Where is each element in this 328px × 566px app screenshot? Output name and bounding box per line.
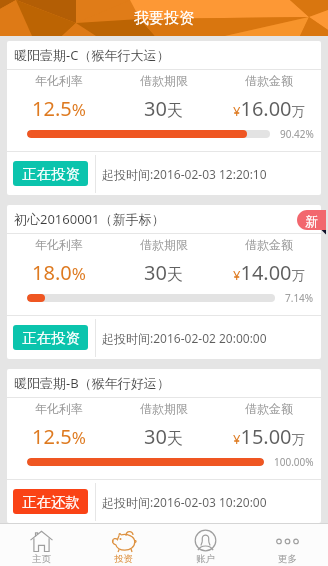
staticText: 年化利率 xyxy=(35,73,83,88)
staticText: 30天 xyxy=(144,95,183,122)
button[interactable]: 投资 xyxy=(82,524,164,566)
staticText: 12.5% xyxy=(32,423,86,450)
staticText: 正在还款 xyxy=(22,493,80,511)
staticText: 更多 xyxy=(278,553,297,565)
staticText: ¥14.00万 xyxy=(233,259,305,286)
other: 新标 xyxy=(297,210,326,235)
staticText: 90.42% xyxy=(280,127,314,141)
staticText: 暖阳壹期-B（猴年行好运） xyxy=(14,374,170,392)
staticText: 借款期限 xyxy=(140,237,188,252)
button[interactable]: 初心20160001（新手标） xyxy=(7,205,321,359)
button[interactable]: 更多 xyxy=(246,524,328,566)
staticText: 起投时间:2016-02-03 12:20:10 xyxy=(102,166,267,182)
staticText: 正在投资 xyxy=(22,165,80,183)
staticText: 借款期限 xyxy=(140,401,188,416)
staticText: 投资 xyxy=(114,553,133,565)
staticText: 主页 xyxy=(32,553,51,565)
staticText: 借款期限 xyxy=(140,73,188,88)
button[interactable]: 正在还款 xyxy=(13,489,88,514)
button[interactable]: 暖阳壹期-B（猴年行好运） xyxy=(7,369,321,523)
other: 主页 xyxy=(30,530,53,552)
staticText: ¥16.00万 xyxy=(233,95,305,122)
staticText: 借款金额 xyxy=(245,401,293,416)
staticText: 7.14% xyxy=(285,291,314,305)
staticText: 新 xyxy=(305,213,318,229)
staticText: ¥15.00万 xyxy=(233,423,305,450)
button[interactable]: 正在投资 xyxy=(13,325,88,350)
staticText: 正在投资 xyxy=(22,329,80,347)
staticText: 我要投资 xyxy=(134,9,194,28)
staticText: 初心20160001（新手标） xyxy=(14,210,165,228)
staticText: 借款金额 xyxy=(245,237,293,252)
staticText: 起投时间:2016-02-03 10:20:00 xyxy=(102,494,267,510)
other: 投资 xyxy=(111,529,136,552)
other: 账户 xyxy=(194,529,217,552)
staticText: 账户 xyxy=(196,553,215,565)
other: 更多 xyxy=(276,530,299,552)
button[interactable]: 正在投资 xyxy=(13,161,88,186)
staticText: 年化利率 xyxy=(35,237,83,252)
button[interactable]: 账户 xyxy=(164,524,246,566)
staticText: 100.00% xyxy=(274,455,314,469)
staticText: 借款金额 xyxy=(245,73,293,88)
button[interactable]: 暖阳壹期-C（猴年行大运） xyxy=(7,41,321,195)
staticText: 30天 xyxy=(144,423,183,450)
button[interactable]: 主页 xyxy=(0,524,82,566)
staticText: 暖阳壹期-C（猴年行大运） xyxy=(14,46,170,64)
staticText: 年化利率 xyxy=(35,401,83,416)
staticText: 30天 xyxy=(144,259,183,286)
staticText: 18.0% xyxy=(32,259,86,286)
staticText: 12.5% xyxy=(32,95,86,122)
staticText: 起投时间:2016-02-02 20:00:00 xyxy=(102,330,267,346)
